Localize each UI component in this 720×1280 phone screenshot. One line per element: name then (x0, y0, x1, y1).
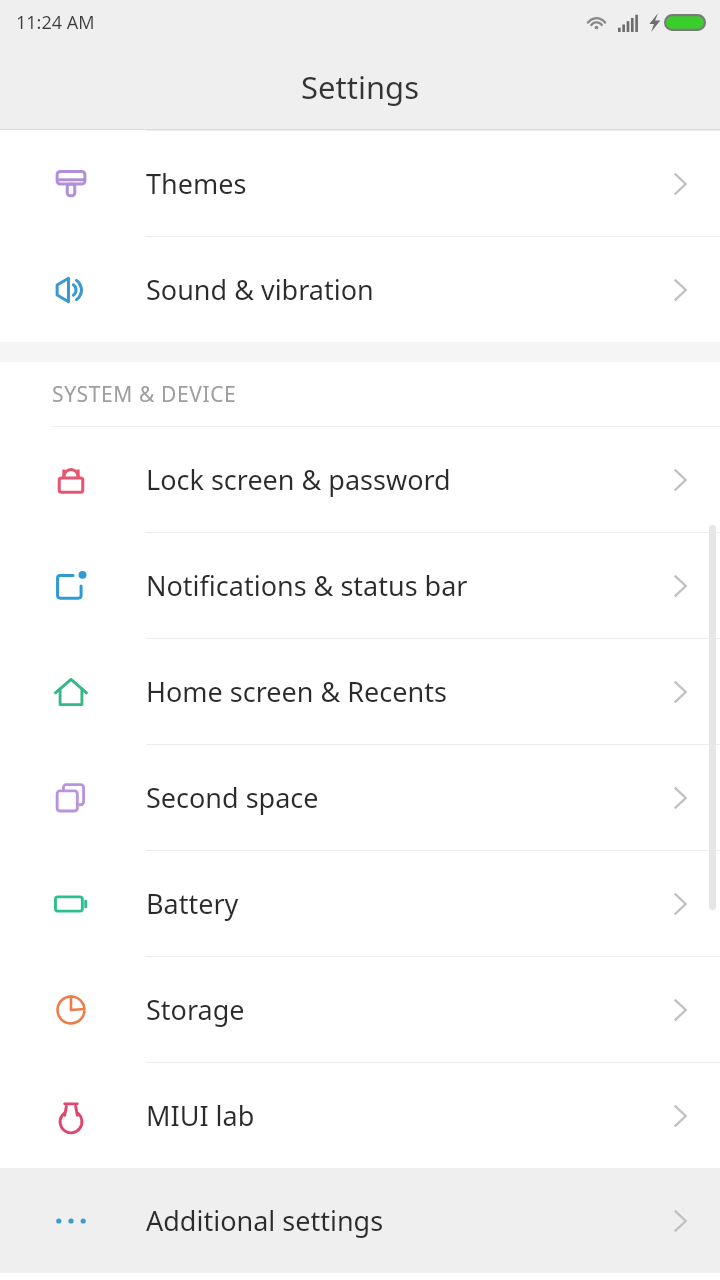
staticText: Home screen & Recents (146, 673, 447, 710)
button[interactable]: Notifications & status bar (0, 533, 720, 638)
staticText: Storage (146, 991, 245, 1028)
staticText: Battery (146, 885, 239, 922)
other: Open Second space (664, 782, 696, 814)
button[interactable]: Battery (0, 851, 720, 956)
other: Open MIUI lab (664, 1100, 696, 1132)
staticText: Notifications & status bar (146, 567, 468, 604)
button[interactable]: Additional settings (0, 1168, 720, 1273)
other: Open Sound & vibration (664, 274, 696, 306)
button[interactable]: Lock screen & password (0, 427, 720, 532)
staticText: MIUI lab (146, 1097, 255, 1134)
other: Open Battery (664, 888, 696, 920)
other: Open Lock screen & password (664, 464, 696, 496)
button[interactable]: MIUI lab (0, 1063, 720, 1168)
other: Open Home screen & Recents (664, 676, 696, 708)
other: Open Notifications & status bar (664, 570, 696, 602)
staticText: 11:24 AM (16, 10, 95, 35)
other: Open Storage (664, 994, 696, 1026)
staticText: Second space (146, 779, 319, 816)
staticText: Themes (146, 165, 247, 202)
button[interactable]: Second space (0, 745, 720, 850)
staticText: Settings (301, 66, 419, 108)
staticText: Additional settings (146, 1202, 384, 1239)
button[interactable]: Storage (0, 957, 720, 1062)
button[interactable]: Home screen & Recents (0, 639, 720, 744)
other: Open Themes (664, 168, 696, 200)
staticText: Sound & vibration (146, 271, 374, 308)
button[interactable]: Sound & vibration (0, 237, 720, 342)
other: Open Additional settings (664, 1205, 696, 1237)
staticText: SYSTEM & DEVICE (52, 380, 237, 409)
staticText: Lock screen & password (146, 461, 451, 498)
button[interactable]: Themes (0, 131, 720, 236)
